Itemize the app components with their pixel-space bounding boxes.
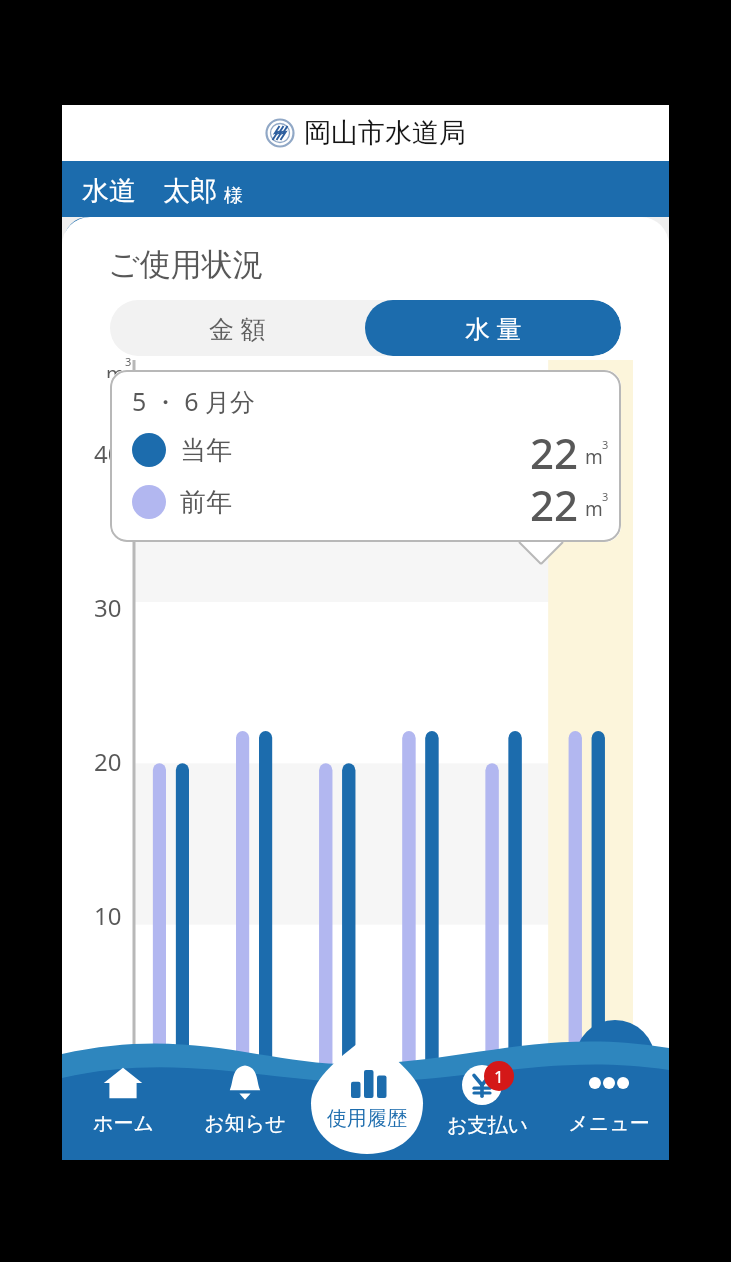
staticText: 2 <box>419 1073 433 1106</box>
staticText: 12 <box>329 1073 357 1106</box>
staticText: 3 <box>602 437 609 452</box>
staticText: 前年 <box>180 486 232 519</box>
staticText: 当年 <box>180 434 232 467</box>
staticText: 岡山市水道局 <box>304 116 466 150</box>
button[interactable]: 金 額 <box>110 300 365 356</box>
staticText: m <box>585 496 603 522</box>
staticText: 金 額 <box>209 311 266 345</box>
staticText: 10 <box>94 899 122 932</box>
button[interactable]: Menu <box>548 1020 669 1160</box>
staticText: 0 <box>108 1053 122 1086</box>
staticText: 10 <box>246 1073 274 1106</box>
staticText: 3 <box>602 489 609 504</box>
button[interactable]: 使用履歴 <box>311 1036 423 1154</box>
button[interactable]: Home <box>62 1020 184 1160</box>
staticText: 様 <box>224 184 243 208</box>
staticText: メニュー <box>568 1111 650 1136</box>
other: Menu <box>587 1063 631 1103</box>
staticText: 22 <box>530 476 579 528</box>
staticText: ホーム <box>93 1111 154 1136</box>
staticText: 月 <box>354 1114 378 1144</box>
staticText: 40 <box>94 437 122 470</box>
button[interactable]: Payments <box>427 1020 548 1160</box>
staticText: m <box>585 444 603 470</box>
staticText: 水道 太郎 <box>82 171 217 208</box>
staticText: 1 <box>494 1065 504 1088</box>
staticText: 使用履歴 <box>327 1106 407 1131</box>
button[interactable]: 5 ・ 6 月分 <box>110 370 621 542</box>
button[interactable]: 水道 太郎 <box>62 161 669 217</box>
staticText: お知らせ <box>204 1111 286 1136</box>
other: Payments <box>462 1061 514 1105</box>
button[interactable]: Scroll to top <box>575 1020 655 1100</box>
staticText: 3 <box>125 354 132 369</box>
staticText: 水 量 <box>465 311 522 345</box>
staticText: 4 <box>502 1073 516 1106</box>
button[interactable]: 水 量 <box>365 300 621 356</box>
other: Notifications <box>225 1063 265 1103</box>
staticText: 5 ・ 6 月分 <box>132 384 256 418</box>
staticText: m <box>106 360 125 378</box>
staticText: ご使用状況 <box>108 245 264 284</box>
staticText: 20 <box>94 745 122 778</box>
staticText: 30 <box>94 591 122 624</box>
staticText: 22 <box>530 424 579 476</box>
staticText: お支払い <box>447 1113 528 1138</box>
staticText: 6 <box>585 1073 599 1106</box>
button[interactable]: Notifications <box>184 1020 306 1160</box>
other: Home <box>103 1063 143 1103</box>
